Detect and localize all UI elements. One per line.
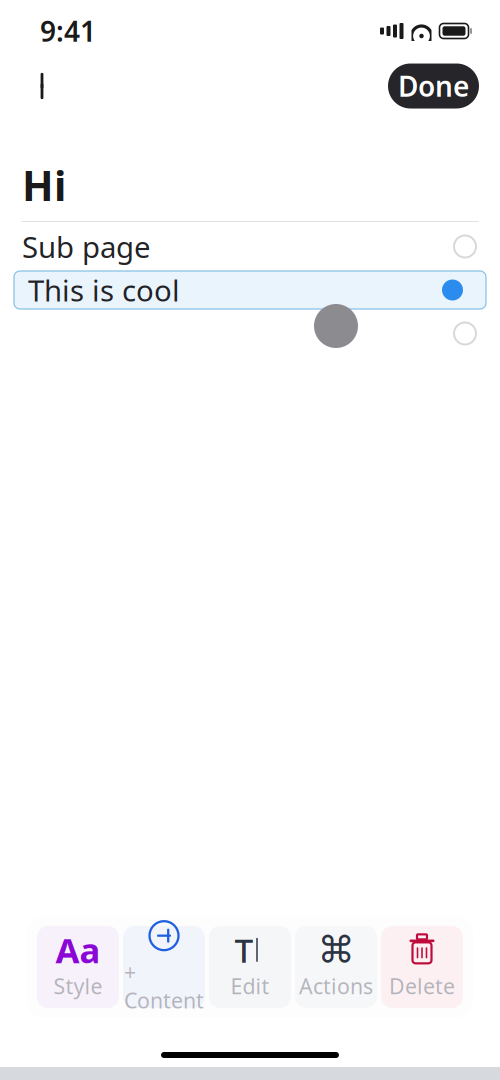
button[interactable] (0, 309, 500, 358)
staticText: Aa (55, 927, 100, 973)
button[interactable]: Aa (37, 926, 119, 1008)
staticText: ⌘ (317, 929, 354, 971)
staticText: Actions (299, 972, 373, 1000)
staticText: + Content (124, 958, 204, 1014)
staticText: T (234, 928, 253, 972)
staticText: Hi (22, 158, 66, 212)
staticText: This is cool (28, 270, 180, 309)
button[interactable]: T (209, 926, 291, 1008)
button[interactable]: This is cool (0, 271, 500, 309)
button[interactable]: + Content (123, 926, 205, 1008)
button[interactable]: Back (16, 60, 68, 112)
button[interactable]: Delete (381, 926, 463, 1008)
staticText: Style (53, 972, 102, 1000)
staticText: Edit (230, 972, 269, 1000)
staticText: Sub page (22, 227, 151, 266)
staticText: 9:41 (40, 12, 96, 50)
button[interactable]: Sub page (0, 222, 500, 271)
staticText: Delete (389, 972, 455, 1000)
staticText: Done (398, 67, 469, 105)
button[interactable]: Done (388, 63, 479, 108)
button[interactable]: ⌘ (295, 926, 377, 1008)
